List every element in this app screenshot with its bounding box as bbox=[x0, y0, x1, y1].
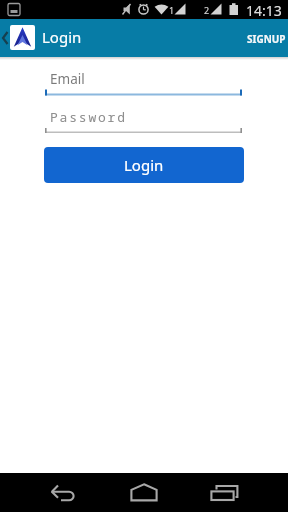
button[interactable]: Password bbox=[44, 104, 242, 133]
button[interactable] bbox=[40, 473, 88, 512]
staticText: 2 bbox=[204, 4, 210, 16]
button[interactable] bbox=[240, 19, 288, 57]
button[interactable] bbox=[198, 473, 246, 512]
staticText: Login bbox=[124, 155, 164, 175]
staticText: Email bbox=[50, 70, 85, 88]
staticText: 14:13 bbox=[246, 1, 282, 20]
staticText: 1 bbox=[169, 4, 175, 16]
button[interactable]: Email bbox=[44, 65, 242, 94]
staticText: SIGNUP bbox=[247, 32, 286, 46]
button[interactable] bbox=[120, 473, 168, 512]
button[interactable] bbox=[10, 25, 35, 50]
staticText: Login bbox=[42, 27, 82, 47]
button[interactable]: Login bbox=[44, 147, 244, 183]
staticText: Password bbox=[50, 108, 127, 126]
